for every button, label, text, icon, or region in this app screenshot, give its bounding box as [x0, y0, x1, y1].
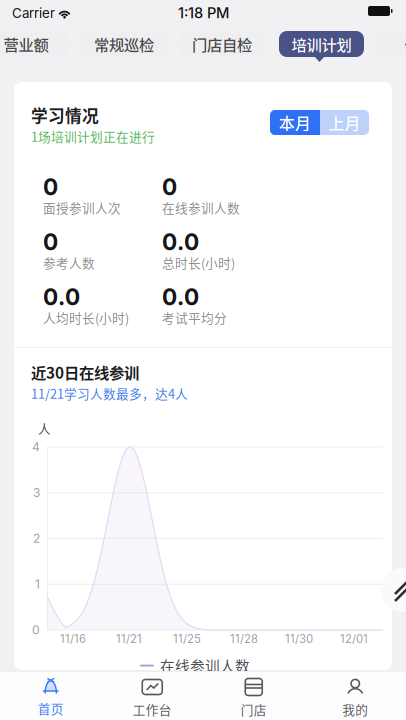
staticText: 营业额 [3, 33, 48, 55]
staticText: 本月 [279, 111, 311, 134]
staticText: 11/28 [230, 632, 258, 646]
staticText: 公告 [404, 33, 406, 55]
staticText: 0 [43, 173, 58, 201]
staticText: 3 [33, 485, 40, 500]
staticText: 培训计划 [291, 33, 351, 55]
staticText: Carrier [12, 5, 55, 21]
staticText: 工作台 [133, 700, 172, 718]
staticText: 总时长(小时) [162, 253, 235, 272]
staticText: 11/21 [116, 632, 142, 646]
staticText: 门店自检 [192, 33, 252, 55]
staticText: 人均时长(小时) [43, 308, 129, 327]
staticText: 0 [43, 228, 58, 256]
staticText: 学习情况 [31, 103, 99, 127]
button[interactable]: 我的 [304, 671, 406, 720]
staticText: 人 [38, 419, 51, 437]
staticText: 在线参训人数 [162, 198, 240, 217]
staticText: 首页 [38, 699, 64, 717]
staticText: 12/01 [340, 632, 368, 646]
button[interactable]: 公告 [375, 31, 406, 57]
staticText: 0.0 [162, 228, 199, 256]
staticText: 11/21学习人数最多，达4人 [31, 384, 188, 402]
button[interactable]: 门店 [203, 671, 304, 720]
staticText: 0.0 [162, 283, 199, 311]
staticText: 考试平均分 [162, 308, 227, 327]
button[interactable]: 门店自检 [178, 31, 266, 57]
staticText: 1场培训计划正在进行 [31, 127, 155, 145]
button[interactable]: 常规巡检 [80, 31, 168, 57]
button[interactable]: 上月 [320, 110, 369, 135]
button[interactable]: 工作台 [101, 671, 203, 720]
staticText: 1 [35, 577, 40, 591]
staticText: 11/16 [60, 632, 86, 646]
staticText: 我的 [342, 700, 368, 718]
staticText: 0.0 [43, 283, 80, 311]
staticText: 近30日在线参训 [31, 361, 139, 383]
staticText: 4 [32, 440, 40, 454]
staticText: 0 [162, 173, 177, 201]
button[interactable]: 首页 [0, 671, 101, 720]
button[interactable]: 培训计划 [279, 31, 364, 57]
staticText: 11/25 [173, 632, 201, 646]
button[interactable]: Scroll to top [381, 568, 406, 612]
staticText: 1:18 PM [178, 4, 229, 22]
staticText: 面授参训人次 [43, 198, 121, 217]
staticText: 0 [32, 623, 40, 637]
staticText: 常规巡检 [94, 33, 154, 55]
staticText: 11/30 [285, 632, 313, 646]
staticText: 在线参训人数 [160, 655, 250, 676]
staticText: 门店 [241, 700, 267, 718]
staticText: 上月 [328, 111, 360, 134]
button[interactable]: 本月 [270, 110, 320, 135]
staticText: 2 [33, 531, 40, 546]
button[interactable]: 营业额 [0, 31, 70, 57]
staticText: 参考人数 [43, 253, 95, 272]
